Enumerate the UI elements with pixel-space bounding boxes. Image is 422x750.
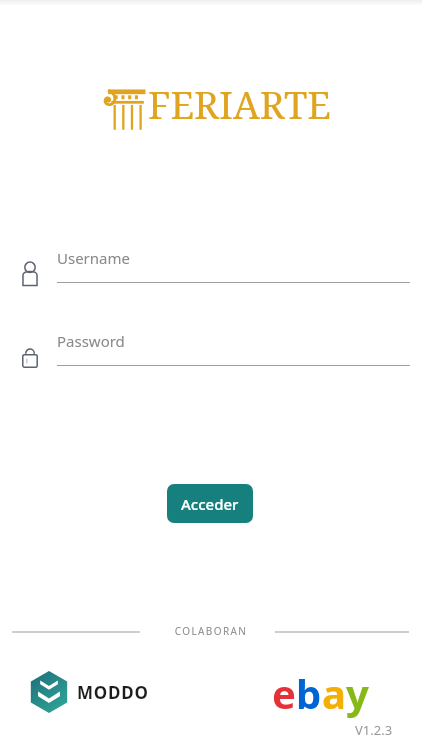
staticText: MODDO <box>77 681 149 704</box>
staticText: V1.2.3 <box>355 721 393 739</box>
other: Password <box>20 343 40 369</box>
other: User <box>20 260 40 286</box>
staticText: COLABORAN <box>0 624 422 638</box>
staticText: b <box>296 666 322 720</box>
staticText: a <box>322 666 346 720</box>
button[interactable]: Acceder <box>167 484 253 523</box>
staticText: Username <box>57 248 130 268</box>
button[interactable]: User <box>0 246 422 292</box>
staticText: e <box>272 666 296 720</box>
staticText: y <box>346 666 369 720</box>
staticText: FERIARTE <box>148 78 331 130</box>
button[interactable]: Password <box>0 329 422 375</box>
staticText: Acceder <box>181 494 239 514</box>
staticText: Password <box>57 331 125 351</box>
